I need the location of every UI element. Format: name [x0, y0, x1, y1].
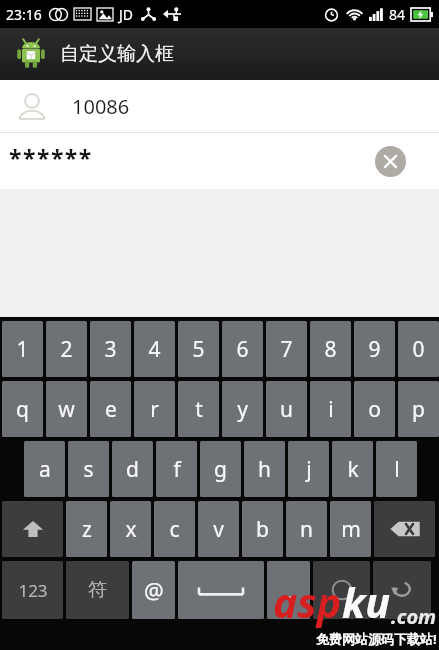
button[interactable]: k — [332, 441, 373, 497]
staticText: j — [306, 455, 312, 484]
button[interactable]: 6 — [222, 321, 263, 377]
staticText: 0 — [412, 335, 425, 364]
staticText: o — [368, 395, 381, 424]
button[interactable]: Backspace — [374, 501, 435, 557]
button[interactable]: q — [2, 381, 43, 437]
button[interactable]: 5 — [178, 321, 219, 377]
button[interactable]: . — [267, 561, 310, 619]
staticText: 123 — [18, 579, 48, 602]
staticText: i — [328, 395, 334, 424]
staticText: q — [16, 395, 29, 424]
button[interactable]: x — [110, 501, 151, 557]
button[interactable]: o — [354, 381, 395, 437]
staticText: m — [341, 515, 361, 544]
staticText: 2 — [60, 335, 73, 364]
button[interactable]: b — [242, 501, 283, 557]
button[interactable]: j — [288, 441, 329, 497]
staticText: a — [39, 455, 51, 484]
button[interactable]: @ — [132, 561, 175, 619]
button[interactable]: 10086 — [0, 80, 439, 132]
staticText: 自定义输入框 — [60, 42, 174, 66]
button[interactable]: t — [178, 381, 219, 437]
staticText: 3 — [104, 335, 117, 364]
button[interactable]: a — [24, 441, 65, 497]
staticText: 84 — [389, 5, 406, 24]
button[interactable]: n — [286, 501, 327, 557]
staticText: .com — [391, 603, 437, 630]
button[interactable]: 1 — [2, 321, 43, 377]
button[interactable]: g — [200, 441, 241, 497]
staticText: 6 — [236, 335, 249, 364]
staticText: c — [169, 515, 180, 544]
button[interactable]: Clear password — [375, 146, 406, 177]
staticText: e — [105, 395, 117, 424]
staticText: r — [150, 395, 159, 424]
staticText: ****** — [9, 142, 93, 173]
staticText: l — [394, 455, 400, 484]
staticText: x — [125, 515, 137, 544]
button[interactable]: 4 — [134, 321, 175, 377]
button[interactable]: h — [244, 441, 285, 497]
staticText: n — [300, 515, 313, 544]
staticText: JD — [119, 5, 134, 24]
staticText: p — [412, 395, 425, 424]
staticText: d — [126, 455, 139, 484]
staticText: g — [214, 455, 227, 484]
button[interactable]: 7 — [266, 321, 307, 377]
button[interactable]: z — [66, 501, 107, 557]
button[interactable]: p — [398, 381, 439, 437]
staticText: 4 — [148, 335, 161, 364]
button[interactable]: Shift — [2, 501, 63, 557]
staticText: 10086 — [72, 93, 130, 120]
button[interactable]: f — [156, 441, 197, 497]
staticText: u — [280, 395, 293, 424]
staticText: y — [237, 395, 248, 424]
button[interactable]: c — [154, 501, 195, 557]
staticText: k — [347, 455, 359, 484]
button[interactable]: m — [330, 501, 371, 557]
staticText: 23:16 — [6, 5, 42, 24]
staticText: ku — [342, 574, 391, 630]
button[interactable]: 符 — [66, 561, 129, 619]
staticText: h — [258, 455, 271, 484]
staticText: w — [58, 395, 75, 424]
button[interactable]: 3 — [90, 321, 131, 377]
button[interactable]: 0 — [398, 321, 439, 377]
staticText: asp — [273, 574, 342, 630]
staticText: t — [195, 395, 203, 424]
staticText: v — [213, 515, 224, 544]
button[interactable]: Enter — [373, 561, 431, 619]
staticText: 5 — [192, 335, 205, 364]
staticText: f — [173, 455, 181, 484]
button[interactable]: Emoji — [313, 561, 370, 619]
button[interactable]: s — [68, 441, 109, 497]
staticText: 7 — [280, 335, 293, 364]
button[interactable]: 9 — [354, 321, 395, 377]
button[interactable]: y — [222, 381, 263, 437]
button[interactable]: 123 — [2, 561, 63, 619]
staticText: 1 — [16, 335, 29, 364]
staticText: 8 — [324, 335, 337, 364]
staticText: . — [286, 575, 292, 605]
button[interactable]: w — [46, 381, 87, 437]
button[interactable]: i — [310, 381, 351, 437]
button[interactable]: Space — [178, 561, 264, 619]
staticText: 符 — [88, 578, 107, 602]
staticText: 免费网站源码下载站! — [316, 630, 437, 648]
button[interactable]: d — [112, 441, 153, 497]
button[interactable]: r — [134, 381, 175, 437]
button[interactable]: e — [90, 381, 131, 437]
button[interactable]: v — [198, 501, 239, 557]
button[interactable]: 2 — [46, 321, 87, 377]
button[interactable]: 8 — [310, 321, 351, 377]
staticText: s — [83, 455, 94, 484]
button[interactable]: ****** — [0, 133, 439, 189]
button[interactable]: l — [376, 441, 417, 497]
staticText: b — [256, 515, 269, 544]
button[interactable]: u — [266, 381, 307, 437]
staticText: 9 — [368, 335, 381, 364]
staticText: z — [82, 515, 92, 544]
staticText: @ — [144, 575, 164, 605]
